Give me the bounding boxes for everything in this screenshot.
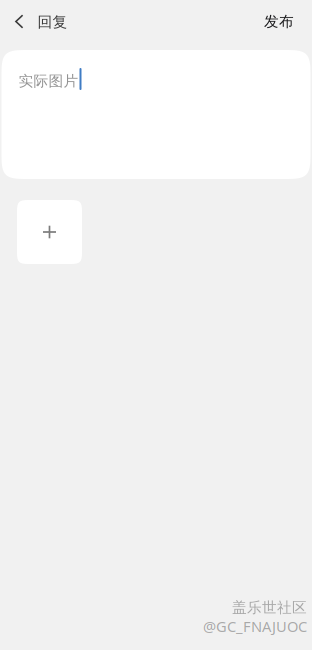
button[interactable]: 回复	[0, 0, 81, 42]
button[interactable]: 发布	[248, 0, 312, 42]
button[interactable]: Add image	[17, 200, 82, 264]
button[interactable]: 实际图片	[1, 50, 310, 179]
staticText: 发布	[264, 12, 294, 30]
staticText: 回复	[37, 13, 67, 31]
staticText: 盖乐世社区	[232, 598, 307, 616]
staticText: 实际图片	[18, 72, 78, 90]
staticText: @GC_FNAJUOC	[203, 616, 307, 636]
